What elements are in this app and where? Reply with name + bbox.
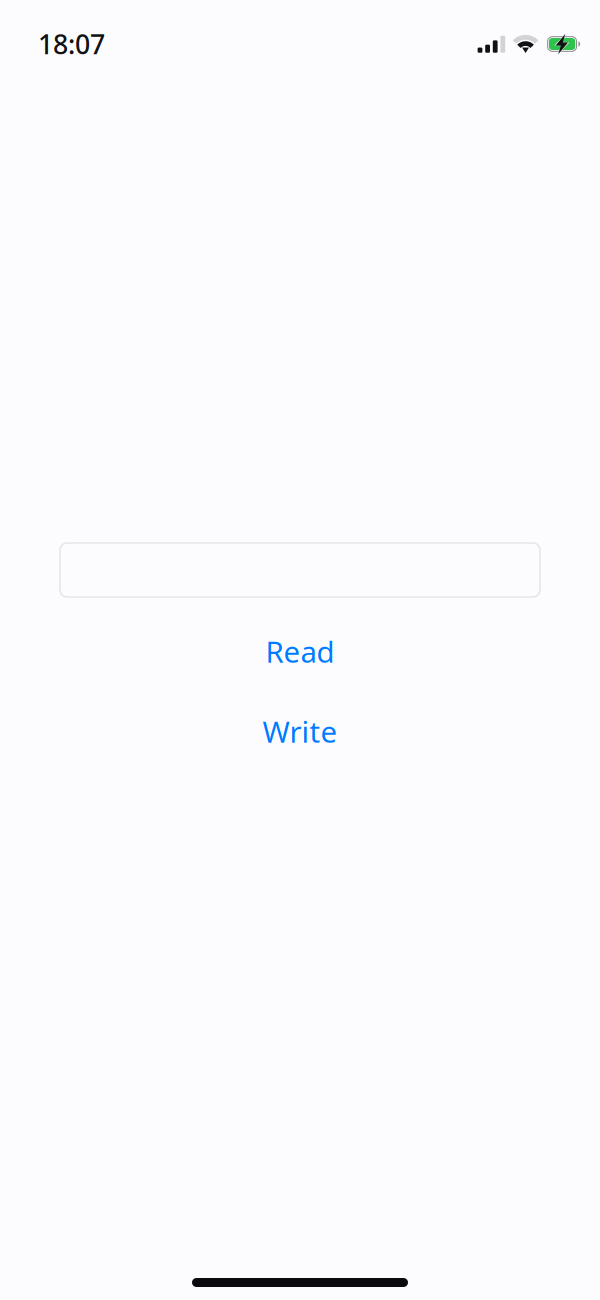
button[interactable]: Write — [0, 698, 600, 765]
staticText: Read — [265, 632, 334, 671]
staticText: Write — [262, 712, 337, 751]
staticText: 18:07 — [38, 26, 105, 62]
button[interactable]: Text field — [60, 543, 540, 597]
button[interactable]: Read — [0, 618, 600, 685]
